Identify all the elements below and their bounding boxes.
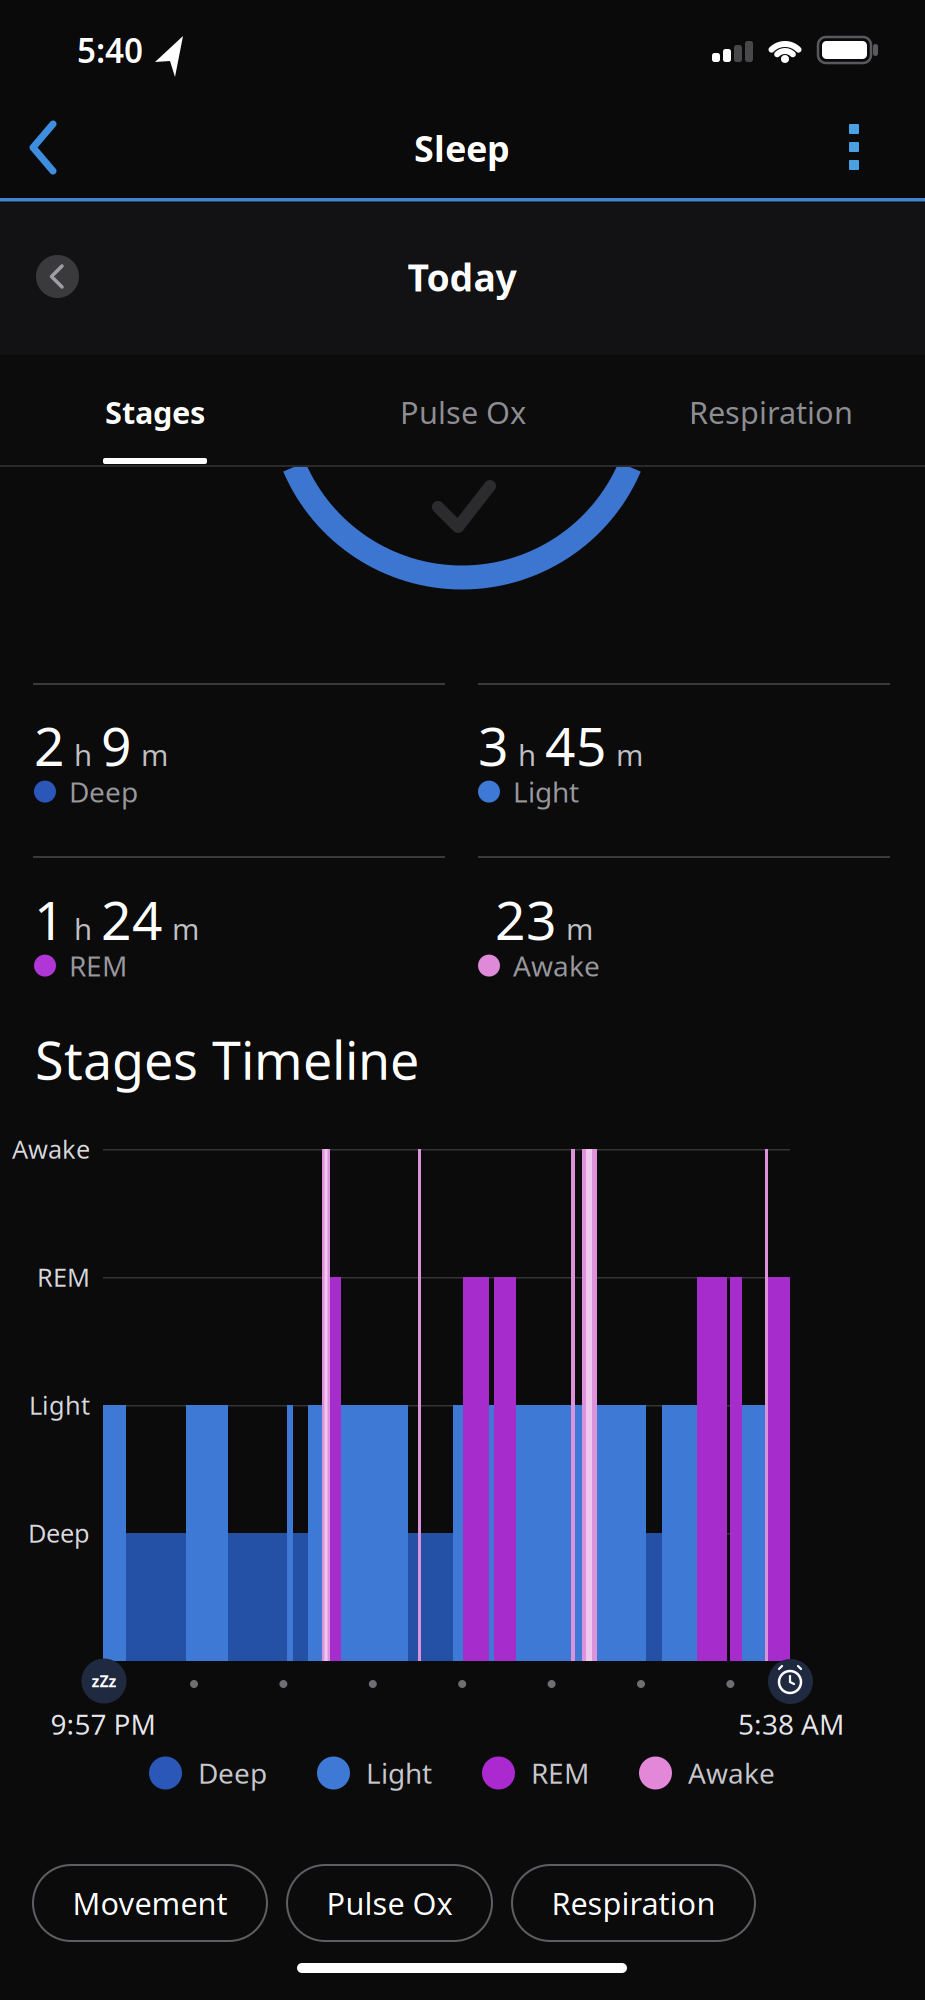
staticText: Deep	[198, 1754, 267, 1792]
staticText: m	[616, 735, 643, 774]
staticText: zZz	[91, 1670, 116, 1692]
staticText: Respiration	[551, 1883, 715, 1923]
staticText: 24	[101, 884, 163, 955]
staticText: 45	[545, 710, 607, 781]
staticText: m	[172, 909, 199, 948]
button[interactable]: Movement	[33, 1865, 267, 1941]
staticText: 9:57 PM	[50, 1705, 155, 1743]
staticText: 2	[34, 710, 65, 781]
staticText: 23	[495, 884, 557, 955]
button[interactable]: Pulse Ox	[400, 392, 526, 432]
staticText: h	[74, 909, 92, 948]
staticText: Today	[407, 252, 516, 302]
staticText: REM	[531, 1754, 589, 1792]
staticText: Deep	[28, 1516, 90, 1550]
staticText: Deep	[69, 773, 138, 810]
button[interactable]: Pulse Ox	[287, 1865, 492, 1941]
staticText: Awake	[12, 1132, 90, 1166]
staticText: Stages Timeline	[35, 1025, 419, 1094]
staticText: 1	[34, 884, 65, 955]
staticText: Awake	[513, 947, 600, 984]
button[interactable]: Respiration	[689, 392, 853, 432]
staticText: Light	[366, 1754, 432, 1792]
staticText: 5:40	[77, 28, 143, 72]
staticText: Awake	[688, 1754, 775, 1792]
staticText: REM	[69, 947, 127, 984]
staticText: m	[566, 909, 593, 948]
staticText: 5:38 AM	[738, 1705, 844, 1743]
staticText: Respiration	[689, 392, 853, 432]
staticText: 3	[478, 710, 509, 781]
staticText: Pulse Ox	[326, 1883, 452, 1923]
staticText: Pulse Ox	[400, 392, 526, 432]
button[interactable]: Previous day	[36, 255, 79, 298]
staticText: h	[74, 735, 92, 774]
staticText: Light	[513, 773, 579, 810]
button[interactable]: Back	[15, 110, 85, 185]
button[interactable]: Respiration	[512, 1865, 755, 1941]
staticText: Stages	[105, 392, 205, 432]
staticText: h	[518, 735, 536, 774]
button[interactable]: Stages	[105, 392, 205, 432]
staticText: Light	[29, 1388, 90, 1422]
staticText: Movement	[72, 1883, 227, 1923]
staticText: Sleep	[414, 124, 510, 172]
staticText: m	[141, 735, 168, 774]
button[interactable]: More options	[834, 119, 874, 189]
staticText: 9	[101, 710, 132, 781]
staticText: REM	[37, 1260, 90, 1294]
